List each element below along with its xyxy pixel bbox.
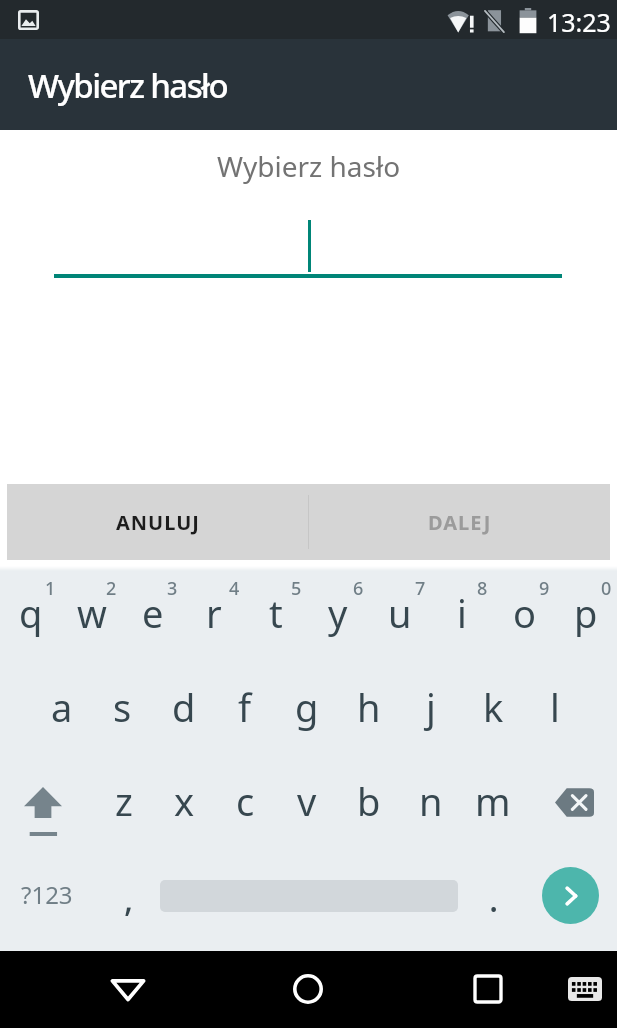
staticText: 13:23: [547, 5, 611, 39]
button[interactable]: x: [154, 758, 215, 852]
button[interactable]: Shift: [0, 758, 93, 852]
button[interactable]: 6: [307, 571, 369, 664]
staticText: l: [550, 681, 560, 733]
button[interactable]: Backspace: [524, 758, 617, 852]
staticText: 6: [353, 576, 364, 601]
button[interactable]: DALEJ: [309, 484, 610, 560]
button[interactable]: h: [338, 664, 400, 758]
staticText: ?123: [21, 878, 73, 911]
staticText: o: [513, 587, 536, 639]
staticText: ,: [124, 876, 134, 922]
button[interactable]: n: [400, 758, 462, 852]
staticText: 7: [415, 576, 426, 601]
other: Screenshot: [18, 10, 39, 30]
button[interactable]: 8: [431, 571, 493, 664]
button[interactable]: 5: [245, 571, 307, 664]
staticText: z: [115, 775, 133, 827]
button[interactable]: Enter: [542, 867, 599, 924]
staticText: m: [475, 775, 511, 827]
staticText: n: [419, 775, 443, 827]
button[interactable]: f: [214, 664, 276, 758]
button[interactable]: c: [215, 758, 276, 852]
staticText: DALEJ: [428, 509, 492, 536]
staticText: w: [77, 587, 107, 639]
button[interactable]: b: [338, 758, 400, 852]
button[interactable]: z: [93, 758, 154, 852]
button[interactable]: Switch keyboard: [555, 959, 615, 1019]
staticText: ANULUJ: [116, 509, 200, 536]
staticText: r: [206, 587, 222, 639]
button[interactable]: g: [276, 664, 338, 758]
button[interactable]: 4: [183, 571, 245, 664]
button[interactable]: d: [153, 664, 214, 758]
staticText: 1: [45, 576, 56, 601]
button[interactable]: 1: [0, 571, 61, 664]
button[interactable]: .: [458, 852, 520, 951]
staticText: c: [236, 775, 255, 827]
staticText: 9: [539, 576, 550, 601]
staticText: t: [269, 587, 283, 639]
staticText: j: [426, 681, 436, 733]
button[interactable]: ,: [96, 852, 160, 951]
staticText: .: [489, 876, 499, 922]
staticText: 5: [291, 576, 302, 601]
button[interactable]: Recent apps: [458, 959, 518, 1019]
staticText: v: [297, 775, 317, 827]
button[interactable]: ?123: [0, 852, 96, 951]
staticText: 3: [167, 576, 178, 601]
button[interactable]: 7: [369, 571, 431, 664]
button[interactable]: Space: [160, 852, 458, 951]
staticText: 8: [477, 576, 488, 601]
staticText: b: [357, 775, 381, 827]
staticText: 4: [229, 576, 240, 601]
staticText: h: [357, 681, 381, 733]
staticText: e: [142, 587, 164, 639]
button[interactable]: v: [276, 758, 338, 852]
staticText: y: [328, 587, 348, 639]
staticText: s: [113, 681, 132, 733]
staticText: Wybierz hasło: [28, 63, 228, 108]
staticText: x: [174, 775, 195, 827]
staticText: g: [295, 681, 319, 733]
staticText: q: [19, 587, 43, 639]
staticText: 0: [601, 576, 612, 601]
button[interactable]: s: [92, 664, 153, 758]
button[interactable]: 0: [555, 571, 617, 664]
staticText: 2: [106, 576, 117, 601]
button[interactable]: j: [400, 664, 462, 758]
staticText: i: [457, 587, 467, 639]
button[interactable]: Back: [98, 959, 158, 1019]
button[interactable]: m: [462, 758, 524, 852]
button[interactable]: ANULUJ: [7, 484, 308, 560]
button[interactable]: Home: [278, 959, 338, 1019]
staticText: k: [483, 681, 504, 733]
button[interactable]: 3: [122, 571, 183, 664]
staticText: u: [388, 587, 412, 639]
staticText: f: [238, 681, 252, 733]
staticText: a: [51, 681, 73, 733]
staticText: p: [574, 587, 598, 639]
button[interactable]: a: [31, 664, 92, 758]
button[interactable]: 9: [493, 571, 555, 664]
staticText: Wybierz hasło: [0, 147, 617, 185]
button[interactable]: 2: [61, 571, 122, 664]
button[interactable]: l: [524, 664, 586, 758]
button[interactable]: k: [462, 664, 524, 758]
staticText: d: [172, 681, 196, 733]
